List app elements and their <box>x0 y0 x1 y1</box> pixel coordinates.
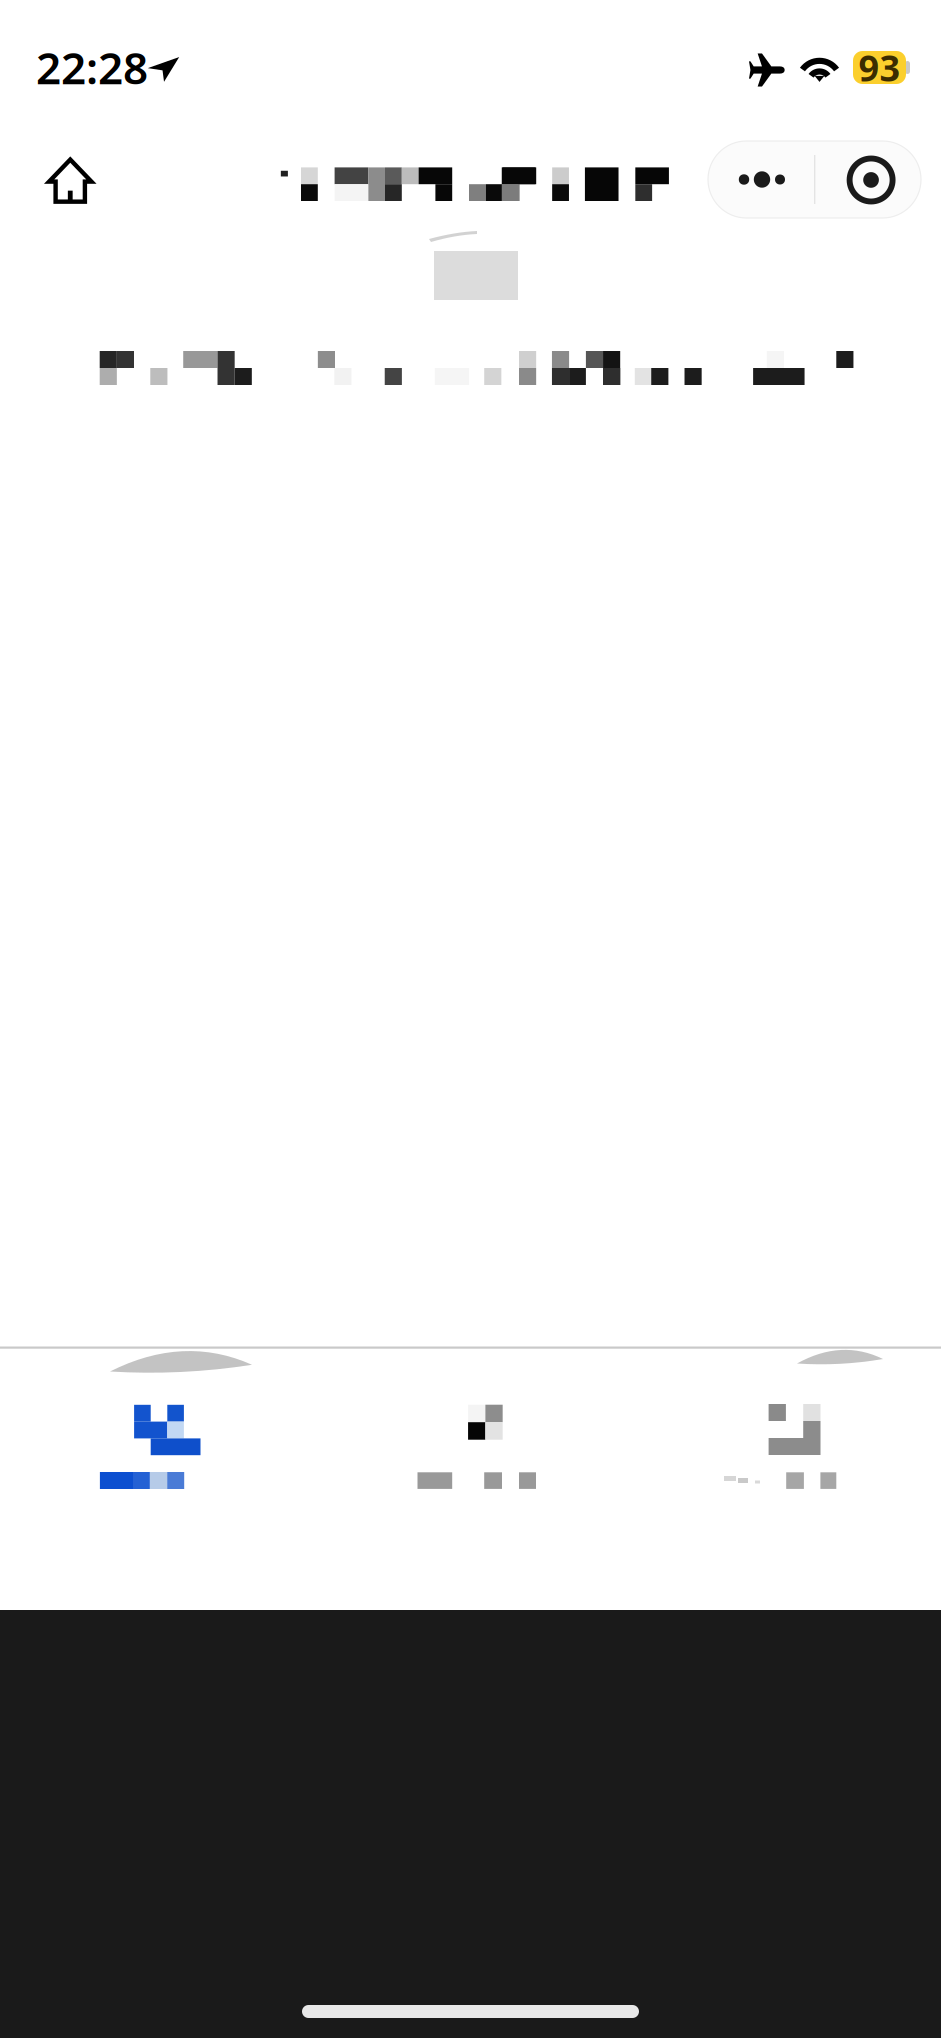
staticText: 22:28 <box>36 38 148 96</box>
button[interactable]: Home <box>47 158 93 203</box>
button[interactable]: Close mini program <box>815 141 921 218</box>
staticText: 93 <box>858 44 900 91</box>
button[interactable]: More <box>708 141 814 218</box>
button[interactable]: Tab one <box>0 1348 313 1548</box>
button[interactable]: Tab two <box>314 1348 628 1548</box>
button[interactable]: Tab three <box>628 1348 941 1548</box>
